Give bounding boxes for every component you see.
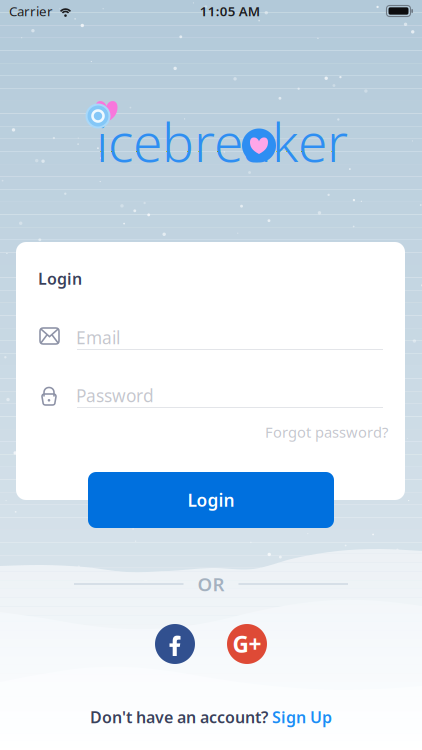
staticText: Sign Up [272,706,332,728]
button[interactable]: Sign in with Facebook [155,624,195,664]
staticText: Carrier [9,2,53,20]
staticText: Login [38,268,82,289]
staticText: OR [197,572,224,596]
button[interactable]: Sign Up [272,706,332,728]
staticText: Password [76,384,154,407]
staticText: 11:05 AM [200,2,260,20]
button[interactable]: Forgot password? [265,422,388,442]
staticText: Login [187,488,234,511]
staticText: G+ [232,629,261,659]
button[interactable]: Login [88,472,334,528]
staticText: icebreaker [96,106,348,177]
staticText: Email [76,326,120,349]
button[interactable]: Sign in with Google [227,624,267,664]
staticText: Don't have an account? [90,706,272,728]
staticText: Forgot password? [265,422,388,442]
